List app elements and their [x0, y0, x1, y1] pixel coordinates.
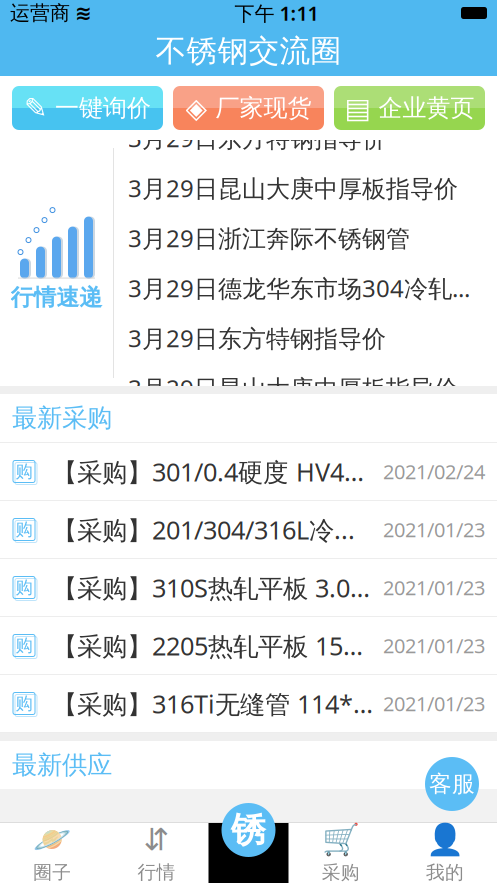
- button[interactable]: 客服: [425, 757, 479, 811]
- staticText: 购: [15, 635, 32, 656]
- staticText: 购: [15, 577, 32, 598]
- button[interactable]: 3月29日浙江奔际不锈钢管: [114, 213, 497, 263]
- staticText: 一键询价: [55, 93, 151, 123]
- staticText: 购: [15, 519, 32, 540]
- button[interactable]: ⇵: [104, 823, 208, 883]
- staticText: 运营商: [10, 1, 70, 25]
- staticText: 👤: [426, 822, 464, 857]
- staticText: 企业黄页: [378, 93, 474, 123]
- button[interactable]: ▤: [334, 86, 485, 130]
- staticText: ≋: [75, 2, 92, 24]
- staticText: 2021/02/24: [383, 458, 485, 485]
- button[interactable]: 🪐: [0, 823, 104, 883]
- staticText: 2021/01/23: [383, 690, 485, 717]
- button[interactable]: 🛒: [288, 823, 393, 883]
- button[interactable]: 3月29日昆山大庚中厚板指导价: [114, 163, 497, 213]
- staticText: 采购: [322, 861, 360, 883]
- staticText: 3月29日昆山大庚中厚板指导价: [128, 172, 458, 204]
- staticText: 3月29日浙江奔际不锈钢管: [128, 222, 410, 254]
- staticText: 客服: [429, 770, 475, 798]
- button[interactable]: 首页: [221, 803, 275, 857]
- staticText: 2021/01/23: [383, 516, 485, 543]
- button[interactable]: 👤: [393, 823, 497, 883]
- staticText: 【采购】301/0.4硬度 HV400-460 ...: [52, 454, 375, 488]
- staticText: 锈: [231, 809, 266, 851]
- button[interactable]: 购: [0, 675, 497, 733]
- button[interactable]: 购: [0, 501, 497, 559]
- staticText: 厂家现货: [215, 93, 311, 123]
- button[interactable]: ✎: [12, 86, 163, 130]
- button[interactable]: 购: [0, 617, 497, 675]
- staticText: 购: [15, 693, 32, 714]
- staticText: 🛒: [322, 822, 360, 857]
- staticText: 最新采购: [12, 402, 112, 433]
- staticText: ▤: [344, 92, 370, 124]
- staticText: 购: [15, 461, 32, 482]
- staticText: ✎: [24, 92, 47, 124]
- button[interactable]: 3月29日东方特钢指导价: [114, 313, 497, 363]
- staticText: ◈: [185, 92, 207, 124]
- staticText: 【采购】310S热轧平板 3.0*1500*6...: [52, 570, 375, 604]
- staticText: ⇵: [143, 822, 169, 857]
- staticText: 3月29日德龙华东市场304冷轧开盘...: [128, 272, 479, 304]
- staticText: 圈子: [33, 861, 71, 883]
- staticText: 下午 1:11: [234, 0, 318, 26]
- button[interactable]: 购: [0, 443, 497, 501]
- staticText: 最新供应: [12, 749, 112, 780]
- staticText: 我的: [426, 861, 464, 883]
- staticText: 【采购】2205热轧平板 1500*6000,...: [52, 628, 375, 662]
- button[interactable]: 3月29日德龙华东市场304冷轧开盘...: [114, 263, 497, 313]
- staticText: 3月29日东方特钢指导价: [128, 122, 386, 154]
- staticText: 3月29日昆山大庚中厚板指导价: [128, 372, 458, 404]
- button[interactable]: 3月29日昆山大庚中厚板指导价: [114, 363, 497, 413]
- staticText: 🪐: [33, 822, 71, 857]
- button[interactable]: 购: [0, 559, 497, 617]
- staticText: 行情速递: [10, 284, 102, 311]
- button[interactable]: ◈: [173, 86, 324, 130]
- staticText: 不锈钢交流圈: [155, 32, 341, 70]
- staticText: 2021/01/23: [383, 632, 485, 659]
- staticText: 【采购】316Ti无缝管 114*6，N0.1: [52, 686, 375, 720]
- staticText: 【采购】201/304/316L冷轧平板 0.3...: [52, 512, 375, 546]
- staticText: 3月29日东方特钢指导价: [128, 322, 386, 354]
- staticText: 行情: [137, 861, 175, 883]
- button[interactable]: 3月29日东方特钢指导价: [114, 113, 497, 163]
- staticText: 2021/01/23: [383, 574, 485, 601]
